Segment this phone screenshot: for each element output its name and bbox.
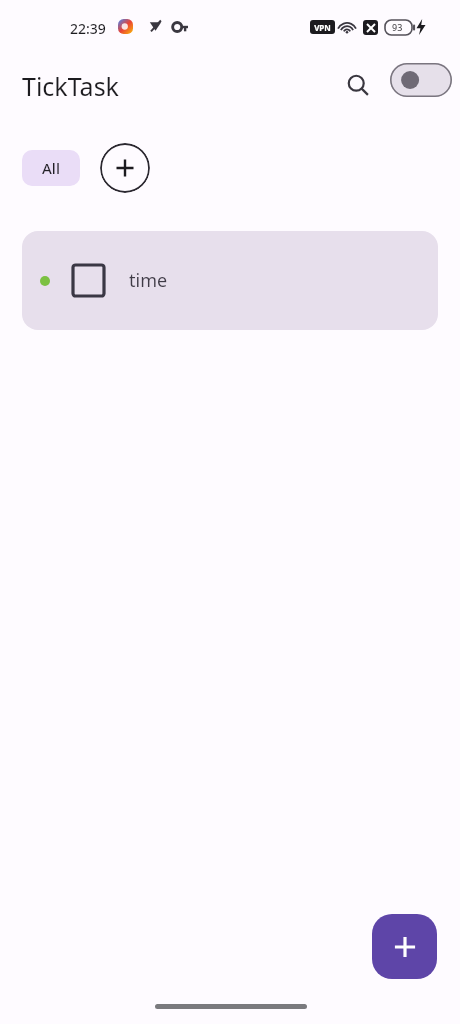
staticText: time [129, 268, 168, 293]
staticText: 93 [392, 21, 403, 33]
button[interactable]: Add task [372, 914, 437, 979]
button[interactable]: Toggle theme [390, 63, 452, 97]
staticText: All [42, 158, 60, 178]
staticText: 22:39 [70, 19, 106, 38]
button[interactable]: All [22, 150, 80, 186]
staticText: VPN [314, 22, 331, 33]
button[interactable]: Add category [100, 143, 150, 193]
button[interactable]: Toggle task complete [22, 231, 438, 330]
button[interactable]: Search [336, 63, 380, 107]
staticText: TickTask [22, 69, 119, 103]
button[interactable]: Toggle task complete [73, 265, 104, 296]
